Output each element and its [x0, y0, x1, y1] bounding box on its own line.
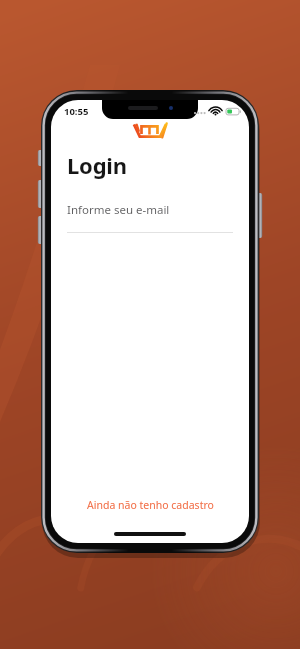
staticText: 10:55: [64, 105, 89, 118]
button[interactable]: Ainda não tenho cadastro: [51, 493, 249, 517]
staticText: Ainda não tenho cadastro: [87, 498, 214, 512]
staticText: Informe seu e-mail: [67, 202, 170, 218]
staticText: Login: [67, 150, 127, 180]
other: App logo: [133, 122, 167, 139]
